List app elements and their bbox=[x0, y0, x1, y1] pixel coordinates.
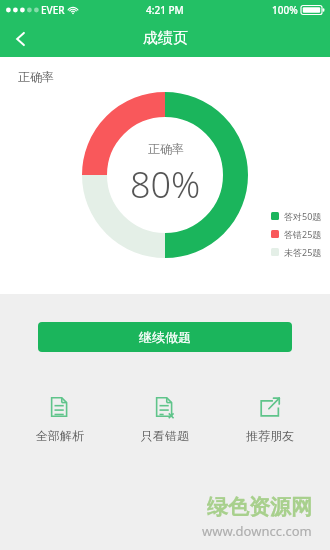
staticText: 100% bbox=[272, 3, 298, 17]
staticText: 成绩页 bbox=[143, 29, 188, 48]
staticText: 4:21 PM bbox=[146, 3, 184, 17]
button[interactable]: Back bbox=[0, 20, 42, 57]
staticText: 绿色资源网 bbox=[207, 494, 312, 520]
button[interactable]: 推荐朋友 bbox=[225, 392, 315, 447]
button[interactable]: 全部解析 bbox=[15, 392, 105, 447]
staticText: 继续做题 bbox=[139, 329, 191, 345]
staticText: 只看错题 bbox=[141, 428, 189, 443]
staticText: EVER bbox=[41, 3, 65, 17]
staticText: 答对50题 bbox=[284, 210, 322, 222]
staticText: 正确率 bbox=[148, 141, 184, 156]
staticText: 未答25题 bbox=[284, 246, 322, 258]
button[interactable]: 只看错题 bbox=[120, 392, 210, 447]
staticText: 80% bbox=[130, 160, 201, 209]
staticText: 正确率 bbox=[18, 69, 54, 84]
staticText: www.downcc.com bbox=[202, 522, 312, 540]
staticText: 答错25题 bbox=[284, 228, 322, 240]
button[interactable]: 继续做题 bbox=[38, 322, 292, 352]
staticText: 推荐朋友 bbox=[246, 428, 294, 443]
staticText: 全部解析 bbox=[36, 428, 84, 443]
